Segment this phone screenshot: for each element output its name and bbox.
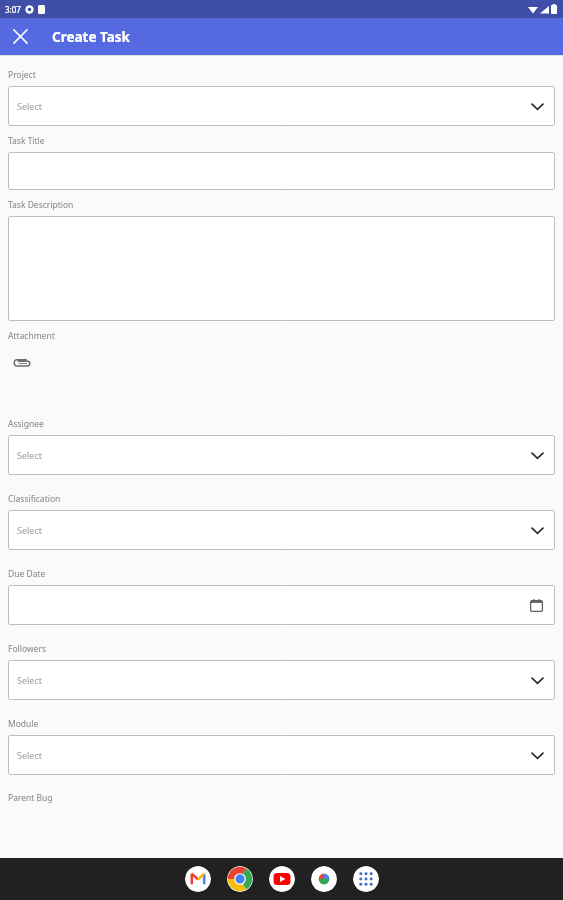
- staticText: Module: [8, 718, 39, 730]
- staticText: Followers: [8, 643, 46, 655]
- button[interactable]: Followers: [8, 660, 555, 700]
- staticText: Select: [17, 449, 42, 461]
- button[interactable]: Close: [0, 18, 40, 55]
- button[interactable]: Module: [8, 735, 555, 775]
- button[interactable]: Assignee: [8, 435, 555, 475]
- staticText: Project: [8, 69, 36, 81]
- button[interactable]: Chrome: [227, 866, 253, 892]
- button[interactable]: Task Description: [8, 216, 555, 321]
- button[interactable]: Project: [8, 86, 555, 126]
- button[interactable]: Google Photos: [311, 866, 337, 892]
- staticText: Select: [17, 100, 42, 112]
- staticText: Attachment: [8, 330, 55, 342]
- staticText: Task Title: [8, 135, 45, 147]
- button[interactable]: All apps: [353, 866, 379, 892]
- button[interactable]: YouTube: [269, 866, 295, 892]
- button[interactable]: Add attachment: [13, 354, 37, 372]
- button[interactable]: Due Date: [8, 585, 555, 625]
- staticText: Assignee: [8, 418, 44, 430]
- staticText: Due Date: [8, 568, 46, 580]
- staticText: Select: [17, 749, 42, 761]
- staticText: Select: [17, 524, 42, 536]
- staticText: Parent Bug: [8, 792, 53, 804]
- staticText: 3:07: [5, 4, 21, 15]
- staticText: Select: [17, 674, 42, 686]
- staticText: Task Description: [8, 199, 74, 211]
- staticText: Classification: [8, 493, 61, 505]
- button[interactable]: Task Title: [8, 152, 555, 190]
- button[interactable]: Gmail: [185, 866, 211, 892]
- button[interactable]: Classification: [8, 510, 555, 550]
- staticText: Create Task: [52, 28, 130, 46]
